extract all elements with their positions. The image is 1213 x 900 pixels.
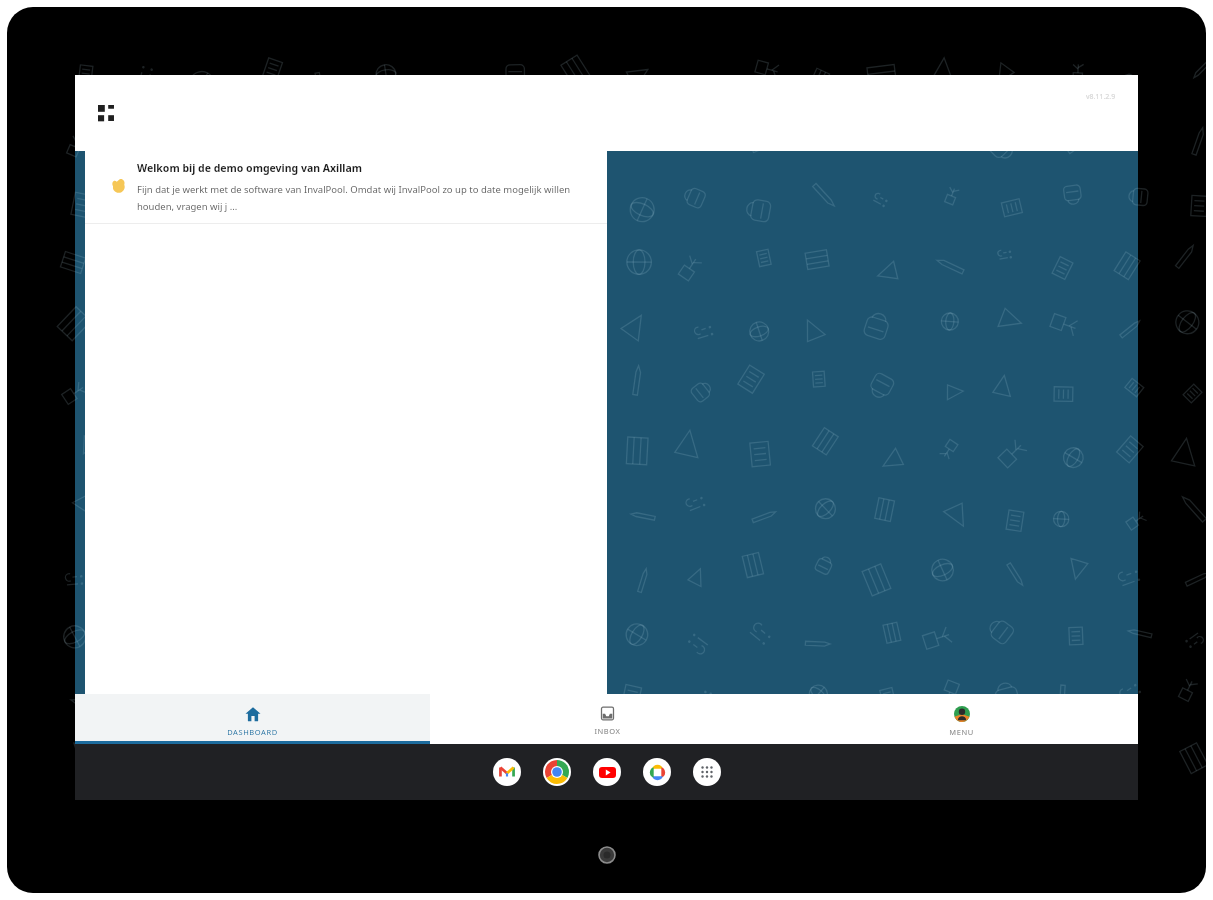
button[interactable]: Chrome [543, 758, 571, 786]
staticText: INBOX [594, 726, 621, 736]
button[interactable]: Page 2 [608, 705, 625, 722]
staticText: MENU [949, 727, 974, 737]
button[interactable]: MENU [784, 694, 1138, 744]
staticText: Fijn dat je werkt met de software van In… [137, 183, 591, 213]
staticText: DASHBOARD [227, 727, 278, 737]
button[interactable]: INBOX [430, 694, 784, 744]
button[interactable]: Dashboard apps [89, 96, 123, 130]
button[interactable]: Google Photos [643, 758, 671, 786]
button[interactable]: Welkom bij de demo omgeving van Axillam [85, 151, 607, 223]
staticText: Welkom bij de demo omgeving van Axillam [137, 161, 363, 175]
button[interactable]: Gmail [493, 758, 521, 786]
button[interactable]: All apps [693, 758, 721, 786]
button[interactable]: DASHBOARD [75, 694, 430, 744]
staticText: v8.11.2.9 [1086, 92, 1116, 102]
button[interactable]: YouTube [593, 758, 621, 786]
